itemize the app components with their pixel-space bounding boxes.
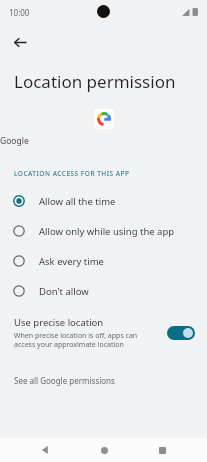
button[interactable]: Back [6, 28, 34, 56]
staticText: Use precise location [14, 316, 104, 329]
staticText: Allow only while using the app [39, 225, 175, 238]
staticText: When precise location is off, apps can a… [14, 331, 159, 349]
button[interactable]: Allow all the time [0, 186, 207, 216]
button[interactable]: Don't allow [0, 276, 207, 306]
button[interactable]: Use precise location toggle [167, 326, 195, 340]
button[interactable]: See all Google permissions [0, 373, 115, 388]
button[interactable]: Allow only while using the app [0, 216, 207, 246]
staticText: Don't allow [39, 285, 89, 298]
staticText: LOCATION ACCESS FOR THIS APP [14, 169, 130, 178]
staticText: Google [0, 135, 207, 147]
button[interactable]: Home [91, 438, 117, 462]
button[interactable]: Ask every time [0, 246, 207, 276]
button[interactable]: Back [32, 438, 58, 462]
staticText: Location permission [14, 70, 176, 93]
button[interactable]: Recent apps [149, 438, 175, 462]
staticText: Allow all the time [39, 195, 116, 208]
staticText: 10:00 [9, 7, 30, 18]
staticText: Ask every time [39, 255, 104, 268]
button[interactable]: Use precise location [0, 312, 207, 355]
